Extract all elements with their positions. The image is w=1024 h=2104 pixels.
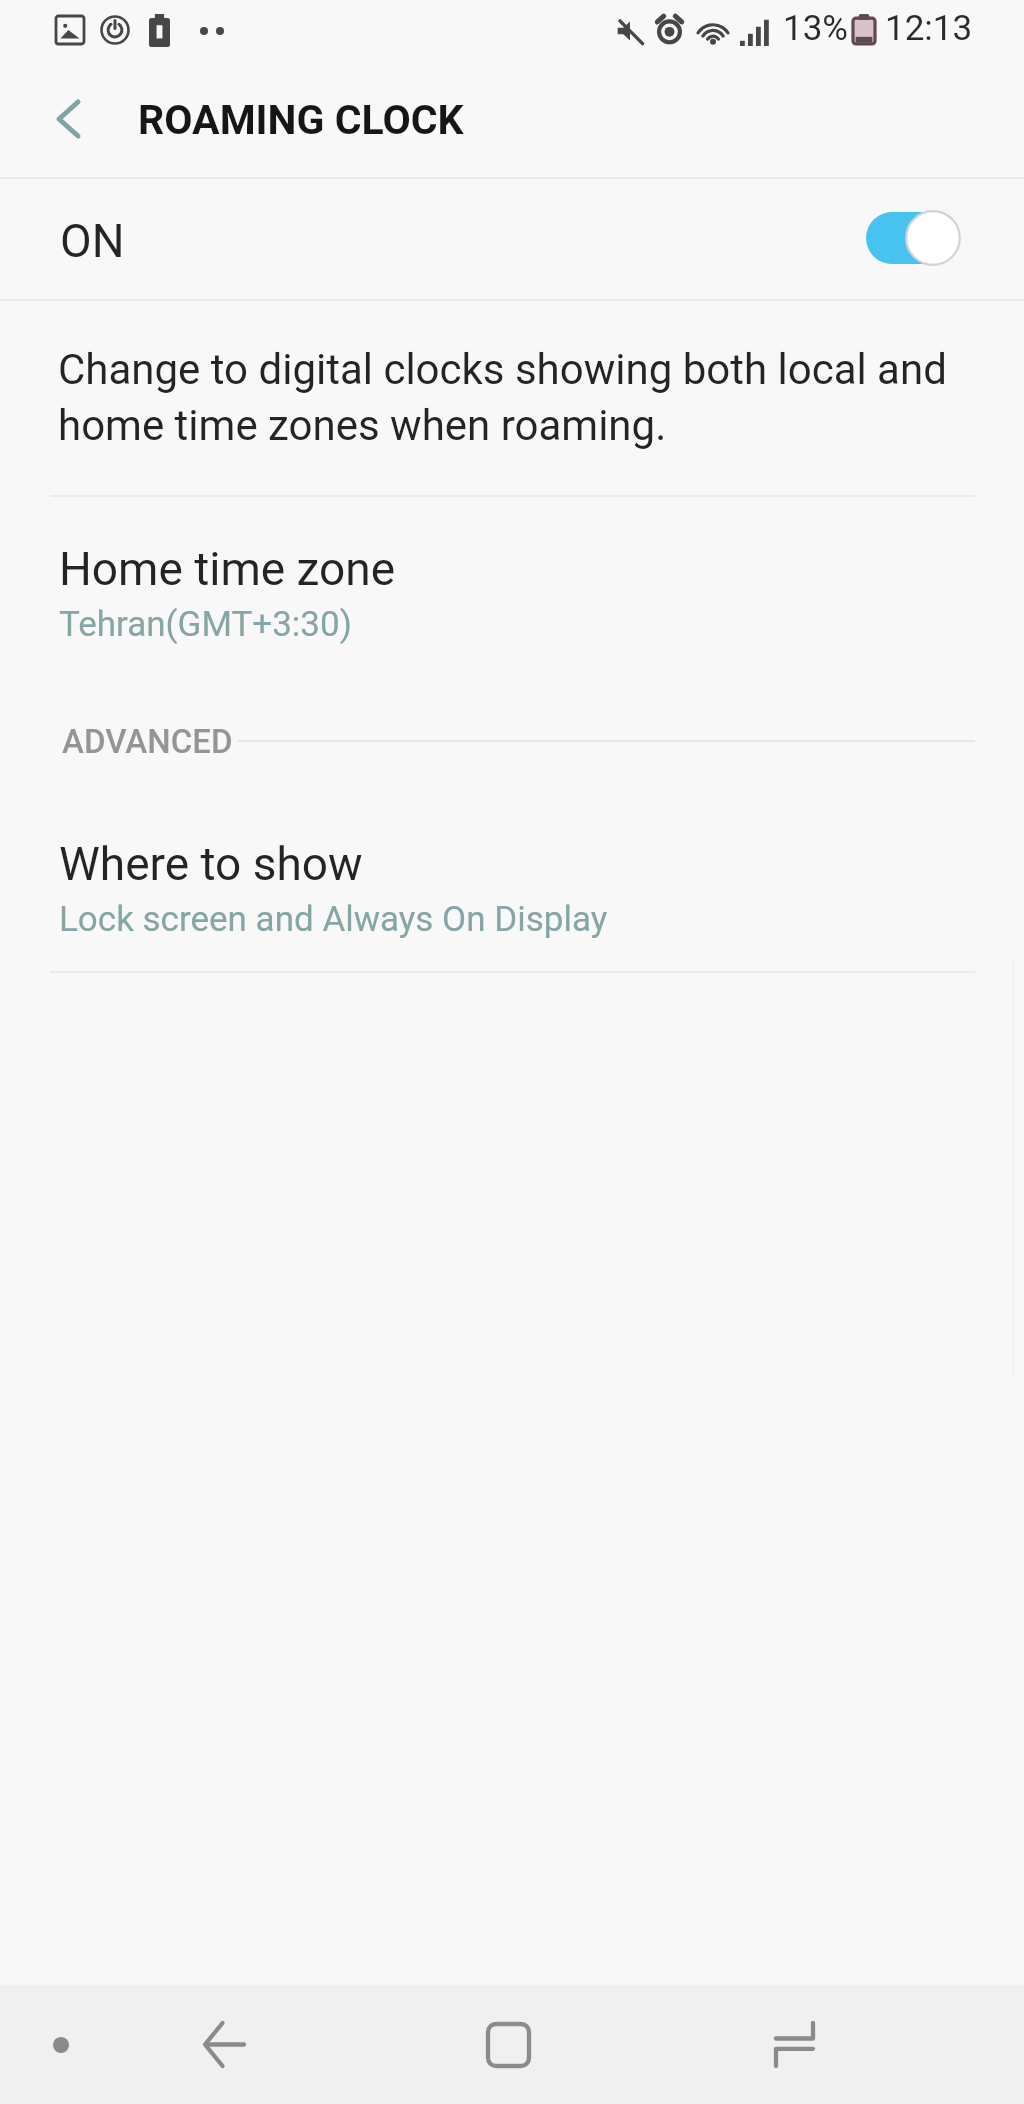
staticText: Lock screen and Always On Display [59,899,608,940]
button[interactable]: Recent apps [734,1985,854,2104]
staticText: ADVANCED [62,722,233,761]
staticText: Tehran(GMT+3:30) [59,604,352,645]
button[interactable]: Home [448,1985,568,2104]
button[interactable]: Back [164,1985,284,2104]
staticText: Home time zone [59,542,396,596]
button[interactable]: Where to show [0,805,1024,968]
staticText: 13% [783,8,848,49]
button[interactable]: Home time zone [0,510,1024,675]
staticText: ROAMING CLOCK [138,96,464,144]
button[interactable]: Navigate up [23,74,113,164]
button[interactable]: ON [0,177,1024,298]
button[interactable]: Roaming clock on [855,202,980,274]
staticText: Change to digital clocks showing both lo… [58,345,947,451]
staticText: ON [60,214,125,268]
staticText: 12:13 [885,8,973,49]
staticText: Where to show [59,837,363,891]
